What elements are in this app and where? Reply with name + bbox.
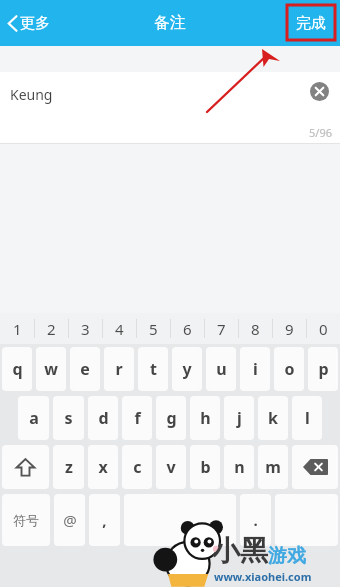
staticText: 符号: [13, 512, 39, 528]
button[interactable]: 符号: [2, 494, 50, 546]
staticText: 5: [149, 319, 158, 339]
button[interactable]: 3: [68, 313, 102, 344]
button[interactable]: 2: [34, 313, 68, 344]
staticText: u: [216, 358, 227, 380]
staticText: m: [265, 456, 281, 478]
staticText: 小黑: [212, 533, 268, 568]
staticText: c: [133, 456, 142, 478]
staticText: x: [98, 456, 108, 478]
button[interactable]: 4: [102, 313, 136, 344]
staticText: 完成: [296, 14, 326, 33]
button[interactable]: k: [258, 396, 288, 440]
staticText: 1: [13, 319, 22, 339]
staticText: g: [166, 407, 177, 429]
button[interactable]: 完成: [282, 0, 340, 46]
button[interactable]: 5: [136, 313, 170, 344]
button[interactable]: 1: [0, 313, 34, 344]
button[interactable]: 7: [204, 313, 238, 344]
button[interactable]: r: [104, 347, 134, 391]
staticText: Keung: [10, 85, 53, 104]
button[interactable]: j: [224, 396, 254, 440]
button[interactable]: Backspace: [292, 445, 338, 489]
staticText: z: [65, 456, 73, 478]
staticText: k: [268, 407, 278, 429]
button[interactable]: y: [172, 347, 202, 391]
staticText: www.xiaohei.com: [214, 569, 312, 584]
staticText: ,: [102, 510, 107, 530]
staticText: f: [134, 407, 141, 429]
button[interactable]: Clear text: [305, 77, 333, 105]
button[interactable]: h: [190, 396, 220, 440]
staticText: 7: [217, 319, 226, 339]
button[interactable]: ,: [89, 494, 120, 546]
button[interactable]: e: [70, 347, 100, 391]
button[interactable]: b: [190, 445, 220, 489]
staticText: .: [253, 510, 258, 530]
staticText: 0: [319, 319, 328, 339]
button[interactable]: 8: [238, 313, 272, 344]
staticText: 2: [47, 319, 56, 339]
staticText: a: [29, 407, 39, 429]
staticText: v: [166, 456, 176, 478]
staticText: t: [150, 358, 157, 380]
button[interactable]: 0: [306, 313, 340, 344]
staticText: 8: [251, 319, 260, 339]
button[interactable]: g: [156, 396, 186, 440]
button[interactable]: @: [54, 494, 85, 546]
button[interactable]: a: [18, 396, 49, 440]
staticText: l: [305, 407, 310, 429]
staticText: h: [200, 407, 211, 429]
staticText: 游戏: [268, 544, 306, 568]
button[interactable]: t: [138, 347, 168, 391]
button[interactable]: f: [122, 396, 152, 440]
staticText: b: [200, 456, 211, 478]
button[interactable]: o: [274, 347, 304, 391]
staticText: p: [318, 358, 329, 380]
button[interactable]: x: [88, 445, 118, 489]
button[interactable]: d: [88, 396, 118, 440]
button[interactable]: w: [36, 347, 66, 391]
staticText: 9: [285, 319, 294, 339]
staticText: n: [234, 456, 245, 478]
button[interactable]: Keung: [0, 72, 340, 143]
button[interactable]: u: [206, 347, 236, 391]
staticText: 4: [115, 319, 124, 339]
button[interactable]: q: [2, 347, 32, 391]
staticText: i: [253, 358, 258, 380]
staticText: y: [182, 358, 192, 380]
staticText: @: [63, 510, 77, 530]
staticText: 6: [183, 319, 192, 339]
staticText: w: [44, 358, 58, 380]
staticText: 备注: [154, 13, 186, 33]
button[interactable]: 6: [170, 313, 204, 344]
button[interactable]: Shift: [2, 445, 49, 489]
button[interactable]: 更多: [0, 0, 62, 46]
button[interactable]: Space: [124, 494, 236, 546]
button[interactable]: 9: [272, 313, 306, 344]
staticText: e: [80, 358, 90, 380]
staticText: 3: [81, 319, 90, 339]
button[interactable]: .: [240, 494, 271, 546]
button[interactable]: s: [53, 396, 84, 440]
staticText: q: [12, 358, 23, 380]
staticText: d: [98, 407, 109, 429]
button[interactable]: v: [156, 445, 186, 489]
button[interactable]: l: [292, 396, 322, 440]
button[interactable]: p: [308, 347, 338, 391]
button[interactable]: m: [258, 445, 288, 489]
button[interactable]: c: [122, 445, 152, 489]
staticText: 更多: [20, 14, 50, 33]
staticText: s: [64, 407, 73, 429]
button[interactable]: i: [240, 347, 270, 391]
staticText: 5/96: [309, 125, 332, 140]
button[interactable]: z: [53, 445, 84, 489]
button[interactable]: n: [224, 445, 254, 489]
staticText: r: [115, 358, 123, 380]
staticText: j: [237, 407, 242, 429]
staticText: o: [284, 358, 295, 380]
